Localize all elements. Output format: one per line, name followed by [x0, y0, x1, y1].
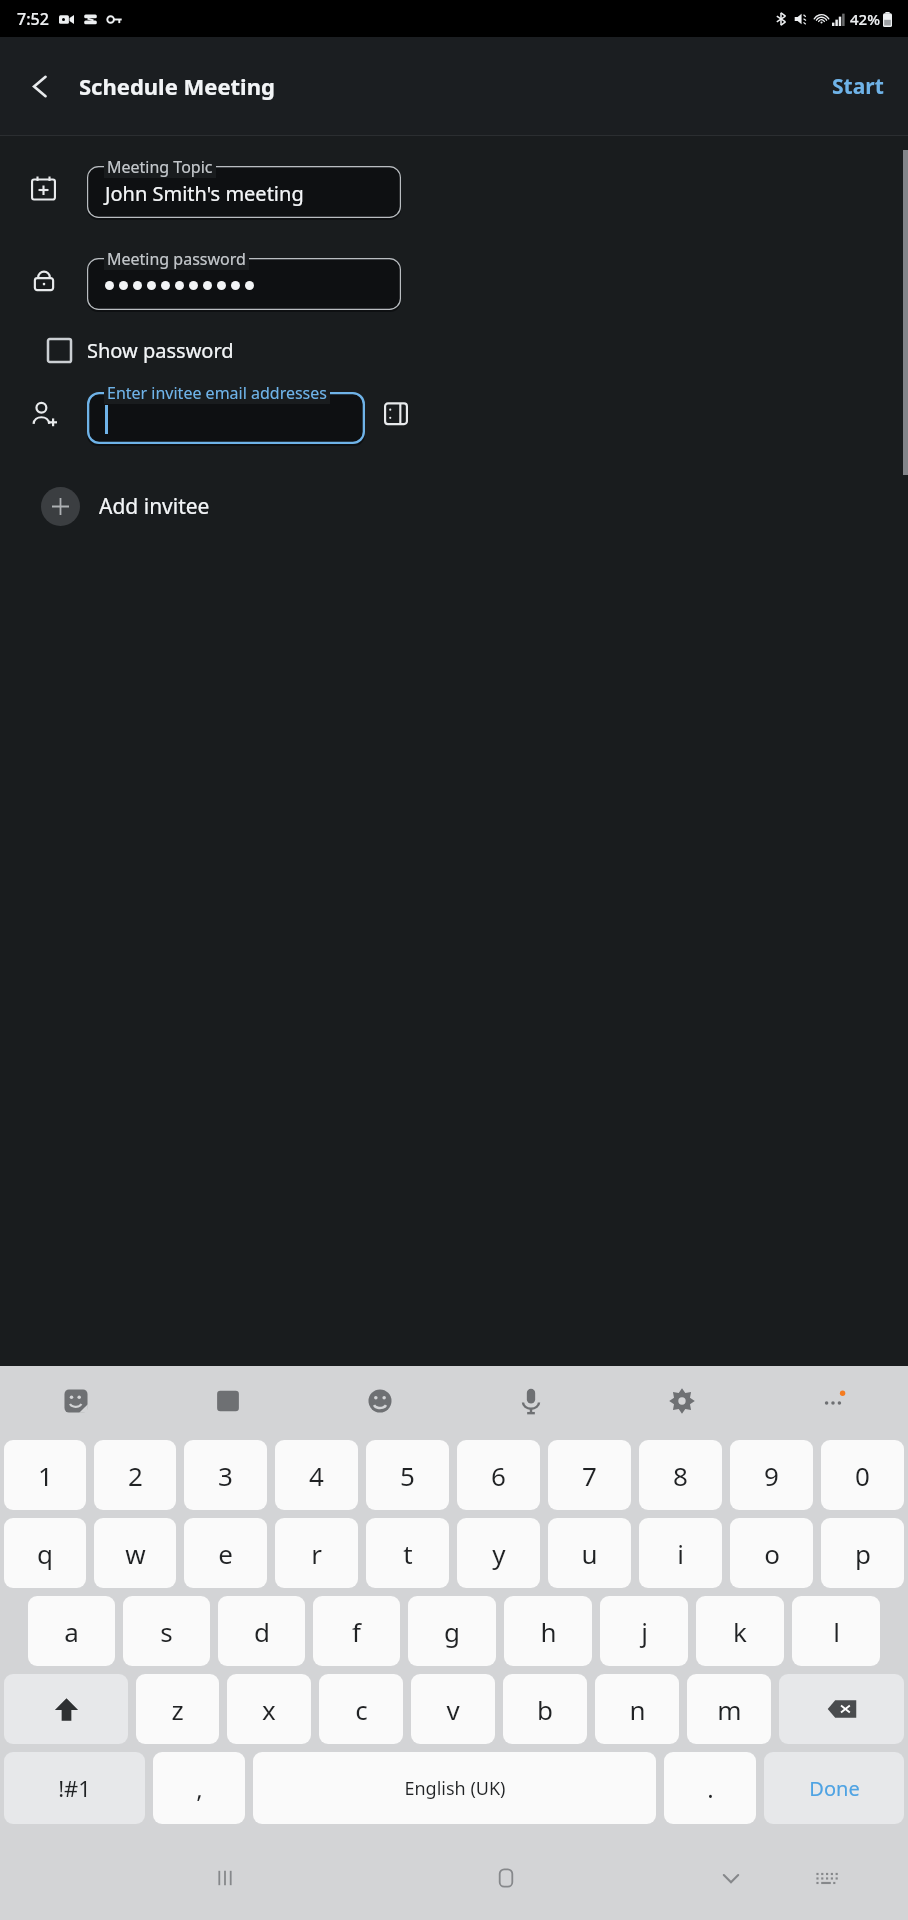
- staticText: i: [677, 1536, 684, 1571]
- staticText: r: [311, 1536, 322, 1571]
- staticText: j: [641, 1614, 648, 1649]
- button[interactable]: GIF: [152, 1366, 304, 1436]
- button[interactable]: Add invitee: [41, 479, 232, 534]
- button[interactable]: w: [94, 1518, 176, 1588]
- button[interactable]: Start: [818, 58, 898, 115]
- button[interactable]: Stickers: [0, 1366, 152, 1436]
- staticText: John Smith's meeting: [105, 180, 304, 207]
- button[interactable]: Choose from contacts: [373, 391, 419, 437]
- staticText: Meeting password: [107, 248, 246, 270]
- staticText: w: [125, 1536, 146, 1571]
- button[interactable]: r: [275, 1518, 358, 1588]
- button[interactable]: Home: [474, 1846, 538, 1910]
- button[interactable]: a: [28, 1596, 115, 1666]
- staticText: q: [37, 1536, 53, 1571]
- staticText: s: [160, 1614, 173, 1649]
- button[interactable]: v: [411, 1674, 495, 1744]
- button[interactable]: l: [792, 1596, 880, 1666]
- button[interactable]: y: [457, 1518, 540, 1588]
- button[interactable]: k: [696, 1596, 784, 1666]
- button[interactable]: Meeting Topic: [87, 156, 401, 220]
- staticText: Schedule Meeting: [79, 71, 275, 101]
- staticText: b: [537, 1692, 553, 1727]
- button[interactable]: 7: [548, 1440, 631, 1510]
- staticText: Done: [809, 1775, 860, 1802]
- button[interactable]: 3: [184, 1440, 267, 1510]
- button[interactable]: Enter invitee email addresses: [87, 382, 365, 446]
- staticText: f: [352, 1614, 361, 1649]
- staticText: x: [262, 1692, 276, 1727]
- button[interactable]: s: [123, 1596, 210, 1666]
- staticText: .: [707, 1772, 714, 1805]
- staticText: English (UK): [404, 1776, 506, 1801]
- button[interactable]: English (UK): [253, 1752, 656, 1824]
- button[interactable]: 4: [275, 1440, 358, 1510]
- button[interactable]: q: [4, 1518, 86, 1588]
- button[interactable]: o: [730, 1518, 813, 1588]
- staticText: u: [581, 1536, 598, 1571]
- button[interactable]: ,: [153, 1752, 245, 1824]
- button[interactable]: Done: [764, 1752, 904, 1824]
- staticText: ,: [196, 1772, 203, 1805]
- staticText: 5: [400, 1458, 415, 1493]
- staticText: 8: [673, 1458, 688, 1493]
- button[interactable]: 1: [4, 1440, 86, 1510]
- staticText: z: [171, 1692, 184, 1727]
- button[interactable]: f: [313, 1596, 400, 1666]
- button[interactable]: x: [227, 1674, 311, 1744]
- button[interactable]: t: [366, 1518, 449, 1588]
- button[interactable]: Shift: [4, 1674, 128, 1744]
- button[interactable]: u: [548, 1518, 631, 1588]
- button[interactable]: Emoji: [304, 1366, 455, 1436]
- button[interactable]: b: [503, 1674, 587, 1744]
- button[interactable]: 8: [639, 1440, 722, 1510]
- button[interactable]: !#1: [4, 1752, 145, 1824]
- button[interactable]: 6: [457, 1440, 540, 1510]
- button[interactable]: j: [600, 1596, 688, 1666]
- staticText: !#1: [58, 1773, 91, 1803]
- staticText: 2: [128, 1458, 143, 1493]
- button[interactable]: Recents: [193, 1846, 257, 1910]
- button[interactable]: i: [639, 1518, 722, 1588]
- button[interactable]: g: [408, 1596, 496, 1666]
- button[interactable]: 0: [821, 1440, 904, 1510]
- button[interactable]: e: [184, 1518, 267, 1588]
- staticText: Show password: [87, 337, 234, 364]
- staticText: h: [540, 1614, 557, 1649]
- button[interactable]: p: [821, 1518, 904, 1588]
- staticText: 6: [491, 1458, 506, 1493]
- button[interactable]: Backspace: [779, 1674, 904, 1744]
- button[interactable]: h: [504, 1596, 592, 1666]
- staticText: 42%: [850, 9, 880, 29]
- staticText: Meeting Topic: [107, 156, 213, 178]
- staticText: d: [254, 1614, 270, 1649]
- button[interactable]: Meeting password: [87, 248, 401, 312]
- button[interactable]: Switch keyboard: [794, 1846, 858, 1910]
- staticText: t: [403, 1536, 413, 1571]
- button[interactable]: 9: [730, 1440, 813, 1510]
- staticText: a: [64, 1614, 79, 1649]
- staticText: 1: [38, 1458, 53, 1493]
- button[interactable]: m: [687, 1674, 771, 1744]
- button[interactable]: Hide keyboard: [699, 1846, 763, 1910]
- button[interactable]: Keyboard settings: [606, 1366, 757, 1436]
- button[interactable]: z: [136, 1674, 219, 1744]
- staticText: m: [717, 1692, 742, 1727]
- button[interactable]: 5: [366, 1440, 449, 1510]
- button[interactable]: Back: [12, 58, 68, 114]
- staticText: y: [492, 1536, 506, 1571]
- button[interactable]: More options: [757, 1366, 908, 1436]
- button[interactable]: Voice input: [455, 1366, 606, 1436]
- staticText: k: [733, 1614, 747, 1649]
- button[interactable]: .: [664, 1752, 756, 1824]
- button[interactable]: 2: [94, 1440, 176, 1510]
- button[interactable]: Show password: [42, 329, 240, 372]
- button[interactable]: c: [319, 1674, 403, 1744]
- button[interactable]: n: [595, 1674, 679, 1744]
- button[interactable]: d: [218, 1596, 305, 1666]
- staticText: 3: [218, 1458, 233, 1493]
- staticText: c: [355, 1692, 368, 1727]
- staticText: o: [764, 1536, 780, 1571]
- staticText: v: [446, 1692, 460, 1727]
- staticText: Start: [832, 72, 884, 101]
